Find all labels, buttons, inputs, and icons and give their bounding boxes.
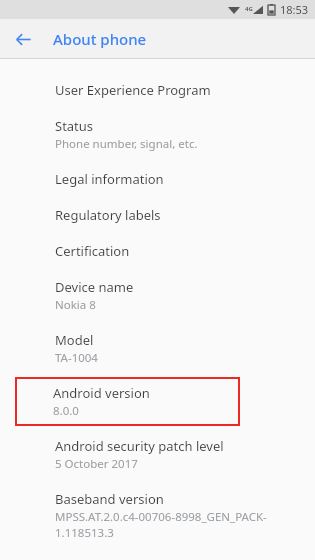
staticText: Model bbox=[55, 331, 94, 349]
button[interactable]: Navigate up bbox=[8, 24, 38, 54]
button[interactable]: Model bbox=[0, 322, 315, 375]
staticText: 5 October 2017 bbox=[55, 456, 138, 472]
button[interactable]: Android security patch level bbox=[0, 428, 315, 481]
staticText: User Experience Program bbox=[55, 81, 211, 99]
staticText: Status bbox=[55, 117, 94, 135]
staticText: TA-1004 bbox=[55, 350, 98, 366]
button[interactable]: Certification bbox=[0, 233, 315, 269]
button[interactable]: User Experience Program bbox=[0, 72, 315, 108]
staticText: About phone bbox=[53, 29, 147, 49]
button[interactable]: Android version bbox=[15, 377, 240, 426]
button[interactable]: Device name bbox=[0, 269, 315, 322]
staticText: Android security patch level bbox=[55, 437, 224, 455]
button[interactable]: Regulatory labels bbox=[0, 197, 315, 233]
staticText: Certification bbox=[55, 242, 130, 260]
staticText: Device name bbox=[55, 278, 134, 296]
staticText: Legal information bbox=[55, 170, 164, 188]
staticText: Baseband version bbox=[55, 490, 164, 508]
staticText: Nokia 8 bbox=[55, 297, 96, 313]
staticText: Phone number, signal, etc. bbox=[55, 136, 198, 152]
staticText: Android version bbox=[53, 384, 150, 402]
button[interactable]: Status bbox=[0, 108, 315, 161]
staticText: 18:53 bbox=[280, 2, 309, 17]
button[interactable]: Baseband version bbox=[0, 481, 315, 549]
button[interactable]: Legal information bbox=[0, 161, 315, 197]
staticText: 4G bbox=[245, 5, 253, 13]
staticText: MPSS.AT.2.0.c4-00706-8998_GEN_PACK- 1.11… bbox=[55, 509, 267, 540]
staticText: 8.0.0 bbox=[53, 403, 79, 419]
staticText: Regulatory labels bbox=[55, 206, 161, 224]
